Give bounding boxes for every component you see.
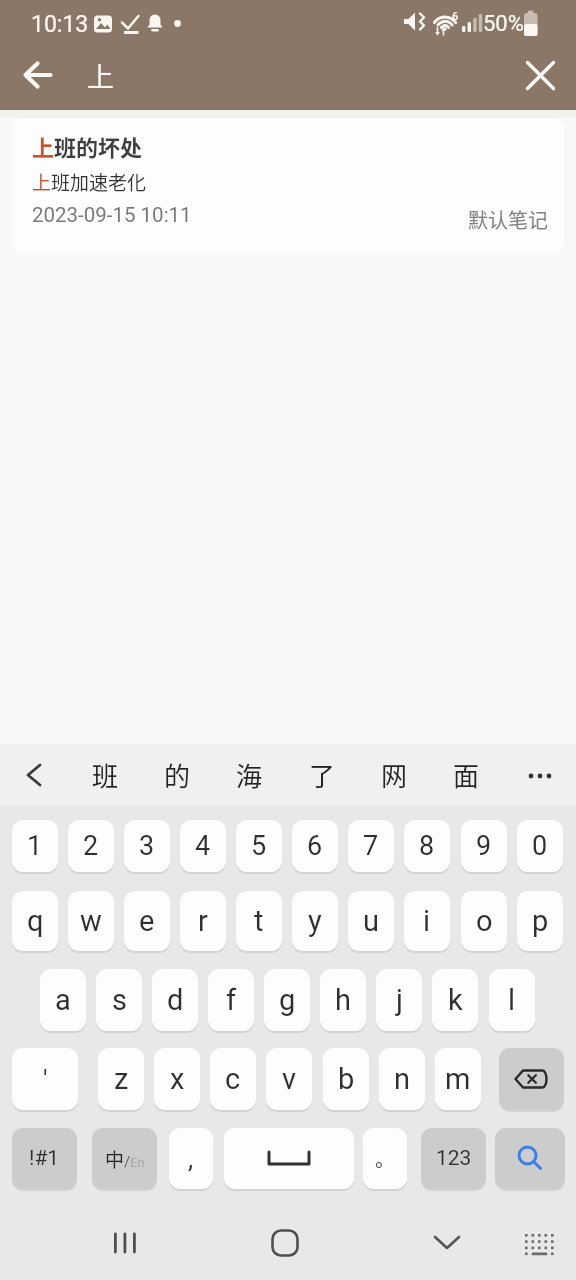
- button[interactable]: h: [320, 969, 366, 1031]
- button[interactable]: z: [98, 1048, 144, 1110]
- staticText: a: [55, 983, 71, 1017]
- button[interactable]: d: [152, 969, 198, 1031]
- button[interactable]: r: [180, 891, 226, 951]
- button[interactable]: x: [154, 1048, 200, 1110]
- button[interactable]: b: [323, 1048, 369, 1110]
- button[interactable]: [261, 1220, 309, 1266]
- button[interactable]: [499, 1048, 564, 1110]
- button[interactable]: 7: [348, 820, 394, 872]
- staticText: 班: [92, 756, 119, 794]
- button[interactable]: e: [124, 891, 170, 951]
- button[interactable]: 中/En: [92, 1128, 157, 1189]
- staticText: p: [532, 904, 549, 938]
- staticText: 5: [251, 830, 267, 862]
- button[interactable]: t: [236, 891, 282, 951]
- staticText: v: [282, 1062, 297, 1096]
- staticText: j: [396, 983, 403, 1017]
- button[interactable]: 班: [79, 744, 131, 806]
- button[interactable]: 面: [440, 744, 492, 806]
- staticText: n: [394, 1062, 411, 1096]
- button[interactable]: c: [210, 1048, 256, 1110]
- staticText: 上班的坏处: [32, 130, 143, 162]
- button[interactable]: s: [96, 969, 142, 1031]
- staticText: f: [226, 983, 237, 1017]
- button[interactable]: 4: [180, 820, 226, 872]
- button[interactable]: [12, 744, 56, 806]
- staticText: w: [80, 904, 102, 938]
- button[interactable]: u: [348, 891, 394, 951]
- staticText: b: [338, 1062, 355, 1096]
- staticText: z: [114, 1062, 129, 1096]
- staticText: e: [139, 904, 155, 938]
- staticText: 2: [83, 830, 99, 862]
- button[interactable]: 上班的坏处: [13, 118, 564, 254]
- staticText: 面: [453, 756, 480, 794]
- staticText: s: [112, 983, 127, 1017]
- button[interactable]: o: [461, 891, 507, 951]
- button[interactable]: 网: [368, 744, 420, 806]
- staticText: !#1: [29, 1146, 60, 1171]
- button[interactable]: n: [379, 1048, 425, 1110]
- button[interactable]: f: [208, 969, 254, 1031]
- staticText: 10:13: [31, 11, 89, 38]
- button[interactable]: !#1: [12, 1128, 77, 1189]
- button[interactable]: i: [404, 891, 450, 951]
- button[interactable]: k: [432, 969, 478, 1031]
- staticText: 默认笔记: [468, 205, 548, 234]
- button[interactable]: [515, 1223, 563, 1263]
- staticText: y: [308, 904, 322, 938]
- staticText: 4: [195, 830, 211, 862]
- staticText: ': [43, 1064, 48, 1094]
- staticText: 中/En: [105, 1145, 145, 1173]
- staticText: 。: [375, 1144, 395, 1173]
- button[interactable]: [516, 744, 564, 806]
- button[interactable]: ': [12, 1048, 78, 1110]
- button[interactable]: [224, 1128, 354, 1189]
- button[interactable]: [495, 1128, 565, 1189]
- staticText: 50%: [483, 11, 524, 37]
- staticText: 海: [236, 756, 263, 794]
- button[interactable]: 6: [292, 820, 338, 872]
- button[interactable]: j: [376, 969, 422, 1031]
- button[interactable]: 5: [236, 820, 282, 872]
- button[interactable]: [100, 1220, 148, 1266]
- button[interactable]: 9: [461, 820, 507, 872]
- staticText: 7: [363, 830, 379, 862]
- staticText: 的: [164, 756, 191, 794]
- button[interactable]: v: [266, 1048, 312, 1110]
- staticText: t: [254, 904, 264, 938]
- staticText: ,: [188, 1144, 194, 1174]
- button[interactable]: p: [517, 891, 563, 951]
- button[interactable]: 了: [296, 744, 348, 806]
- button[interactable]: a: [40, 969, 86, 1031]
- button[interactable]: 的: [151, 744, 203, 806]
- button[interactable]: 海: [223, 744, 275, 806]
- button[interactable]: w: [68, 891, 114, 951]
- button[interactable]: m: [435, 1048, 481, 1110]
- button[interactable]: 1: [12, 820, 58, 872]
- staticText: l: [508, 983, 516, 1017]
- button[interactable]: [14, 52, 62, 98]
- button[interactable]: 123: [421, 1128, 486, 1189]
- button[interactable]: l: [489, 969, 535, 1031]
- button[interactable]: y: [292, 891, 338, 951]
- staticText: h: [335, 983, 351, 1017]
- staticText: c: [225, 1062, 241, 1096]
- button[interactable]: ,: [169, 1128, 213, 1189]
- button[interactable]: g: [264, 969, 310, 1031]
- button[interactable]: 0: [517, 820, 563, 872]
- staticText: 6: [307, 830, 323, 862]
- staticText: x: [170, 1062, 185, 1096]
- button[interactable]: 3: [124, 820, 170, 872]
- staticText: g: [279, 983, 296, 1017]
- button[interactable]: 。: [363, 1128, 407, 1189]
- staticText: u: [363, 904, 379, 938]
- button[interactable]: 2: [68, 820, 114, 872]
- staticText: 上: [87, 56, 114, 95]
- staticText: 1: [27, 830, 43, 862]
- button[interactable]: [423, 1220, 471, 1266]
- staticText: i: [423, 904, 431, 938]
- button[interactable]: 8: [404, 820, 450, 872]
- button[interactable]: q: [12, 891, 58, 951]
- button[interactable]: [516, 52, 564, 98]
